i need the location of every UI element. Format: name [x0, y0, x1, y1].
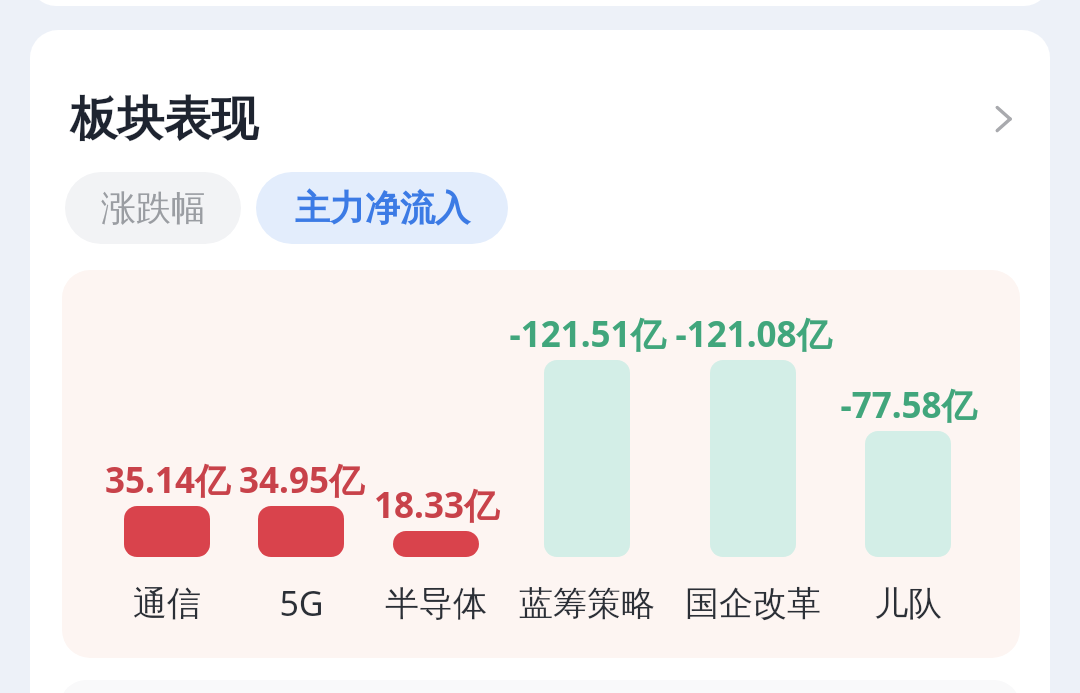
- button[interactable]: [258, 506, 344, 557]
- staticText: 34.95亿: [239, 456, 364, 504]
- staticText: -121.51亿: [509, 310, 666, 358]
- other: 更多板块表现: [976, 93, 1028, 145]
- staticText: 主力净流入: [295, 186, 470, 230]
- staticText: 18.33亿: [374, 481, 499, 529]
- staticText: 板块表现: [70, 90, 258, 149]
- staticText: -77.58亿: [840, 381, 977, 429]
- staticText: 儿队: [874, 582, 942, 625]
- staticText: 35.14亿: [105, 456, 230, 504]
- staticText: 国企改革: [685, 582, 821, 625]
- button[interactable]: [710, 360, 796, 557]
- button[interactable]: [544, 360, 630, 557]
- staticText: 蓝筹策略: [519, 582, 655, 625]
- button[interactable]: [124, 506, 210, 557]
- staticText: 通信: [133, 582, 201, 625]
- staticText: 半导体: [385, 582, 487, 625]
- staticText: 涨跌幅: [101, 186, 206, 230]
- button[interactable]: 主力净流入: [256, 172, 508, 244]
- button[interactable]: 板块表现: [30, 86, 1050, 152]
- staticText: -121.08亿: [675, 310, 832, 358]
- staticText: 5G: [279, 580, 324, 626]
- button[interactable]: [393, 531, 479, 557]
- button[interactable]: [865, 431, 951, 557]
- button[interactable]: 涨跌幅: [65, 172, 241, 244]
